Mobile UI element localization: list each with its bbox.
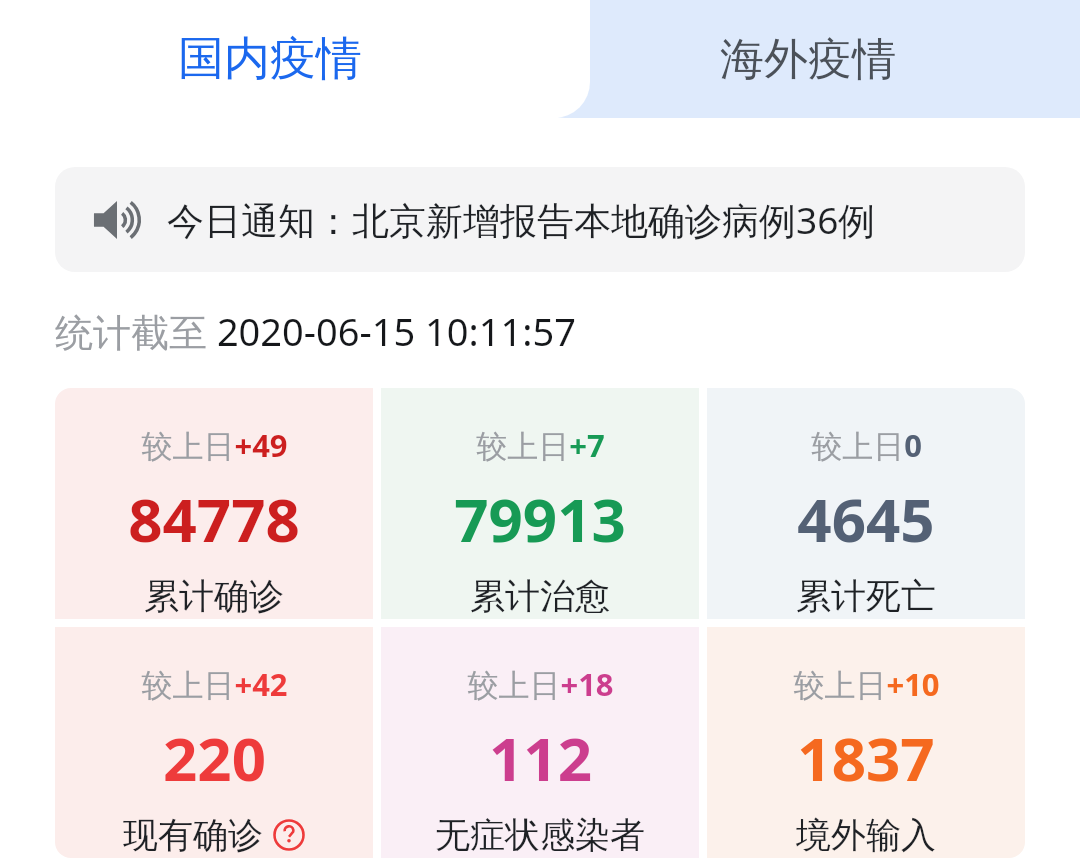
staticText: 无症状感染者 <box>435 813 645 857</box>
staticText: 84778 <box>128 478 300 560</box>
staticText: 较上日+49 <box>141 424 288 466</box>
staticText: 1837 <box>797 717 935 799</box>
button[interactable]: 较上日+10 <box>707 627 1025 858</box>
staticText: 国内疫情 <box>178 30 362 88</box>
staticText: 较上日+10 <box>793 663 940 705</box>
button[interactable]: 国内疫情 <box>0 0 590 118</box>
staticText: 海外疫情 <box>720 32 896 87</box>
button[interactable]: Announcement <box>55 167 1025 272</box>
button[interactable]: Help <box>273 819 305 851</box>
button[interactable]: 较上日+42 <box>55 627 373 858</box>
staticText: 112 <box>489 717 592 799</box>
staticText: 较上日0 <box>811 424 922 466</box>
staticText: 累计确诊 <box>144 574 284 618</box>
staticText: 统计截至 2020-06-15 10:11:57 <box>55 305 576 357</box>
button[interactable]: 较上日+49 <box>55 388 373 619</box>
staticText: 现有确诊 <box>123 813 263 857</box>
staticText: 220 <box>163 717 266 799</box>
staticText: 4645 <box>797 478 935 560</box>
other: Announcement <box>93 199 141 241</box>
staticText: 境外输入 <box>796 813 936 857</box>
staticText: 79913 <box>454 478 626 560</box>
button[interactable]: 较上日+18 <box>381 627 699 858</box>
staticText: 较上日+7 <box>476 424 605 466</box>
staticText: 累计治愈 <box>470 574 610 618</box>
staticText: 今日通知：北京新增报告本地确诊病例36例 <box>167 194 876 245</box>
staticText: 较上日+18 <box>467 663 614 705</box>
staticText: 较上日+42 <box>141 663 288 705</box>
button[interactable]: 较上日+7 <box>381 388 699 619</box>
button[interactable]: 海外疫情 <box>535 0 1080 118</box>
staticText: 累计死亡 <box>796 574 936 618</box>
button[interactable]: 较上日0 <box>707 388 1025 619</box>
